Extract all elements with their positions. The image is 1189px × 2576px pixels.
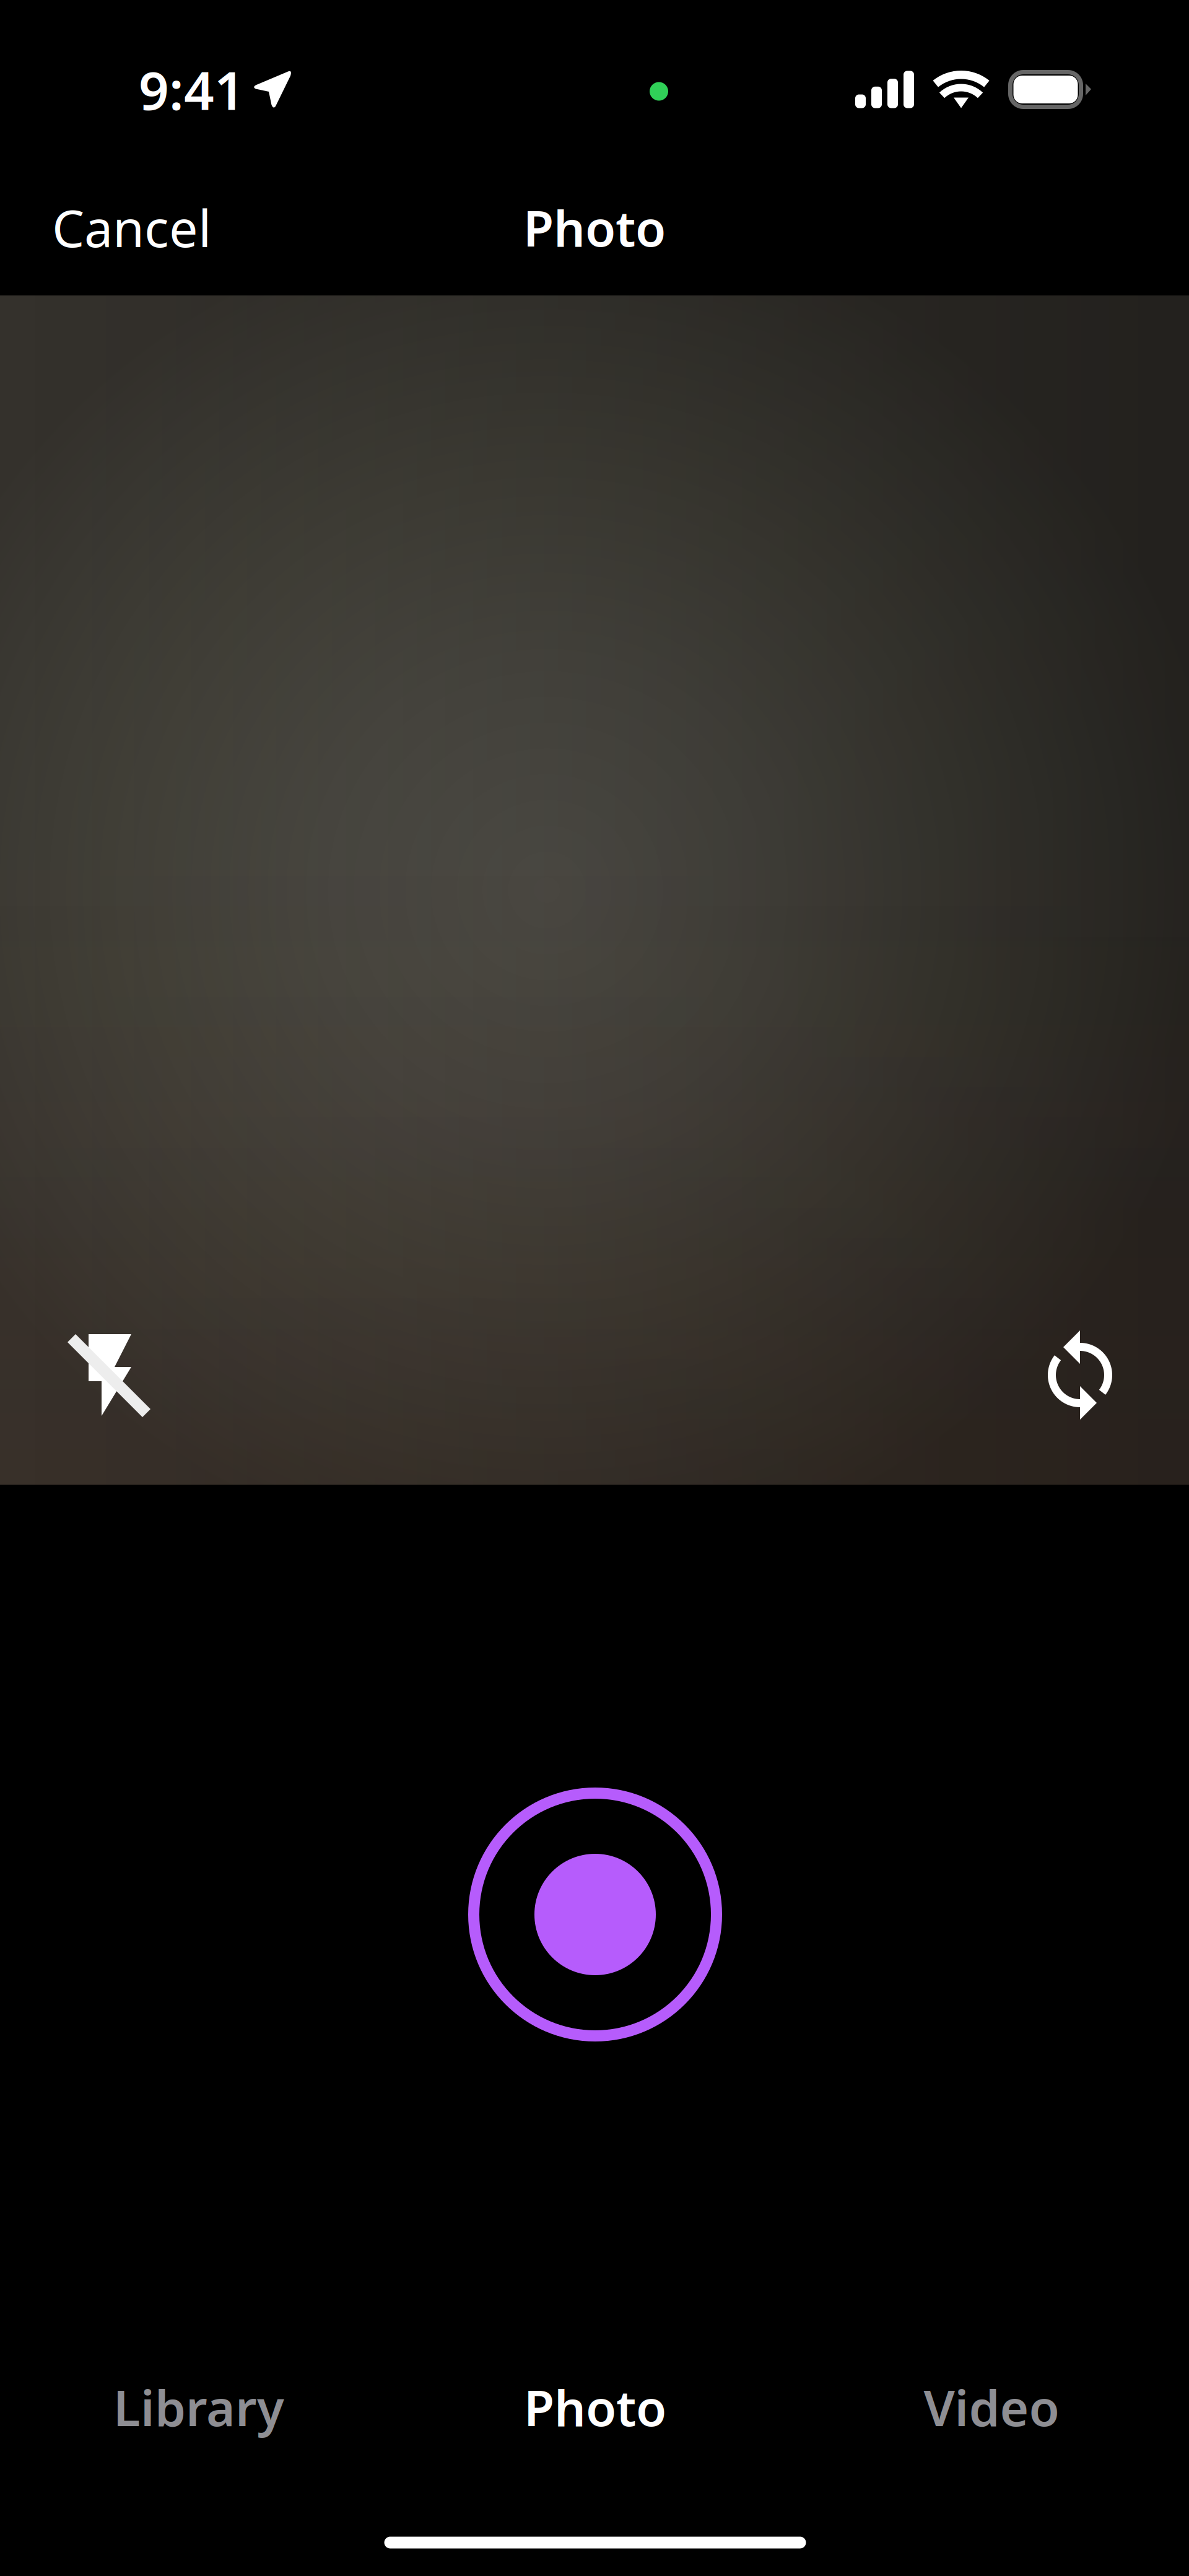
button[interactable]: Switch camera (1019, 1314, 1189, 1441)
staticText: Photo (523, 194, 666, 260)
button[interactable]: Video (793, 2360, 1189, 2453)
button[interactable]: Take Picture (450, 1769, 741, 2060)
staticText: Photo (524, 2374, 666, 2440)
staticText: Library (113, 2374, 284, 2440)
button[interactable]: Library (1, 2360, 397, 2453)
staticText: 9:41 (139, 54, 245, 125)
button[interactable]: Flash off (0, 1315, 179, 1440)
button[interactable]: Cancel (37, 187, 226, 287)
staticText: Cancel (52, 193, 211, 261)
staticText: Video (924, 2374, 1059, 2440)
button[interactable]: Photo (397, 2360, 793, 2453)
